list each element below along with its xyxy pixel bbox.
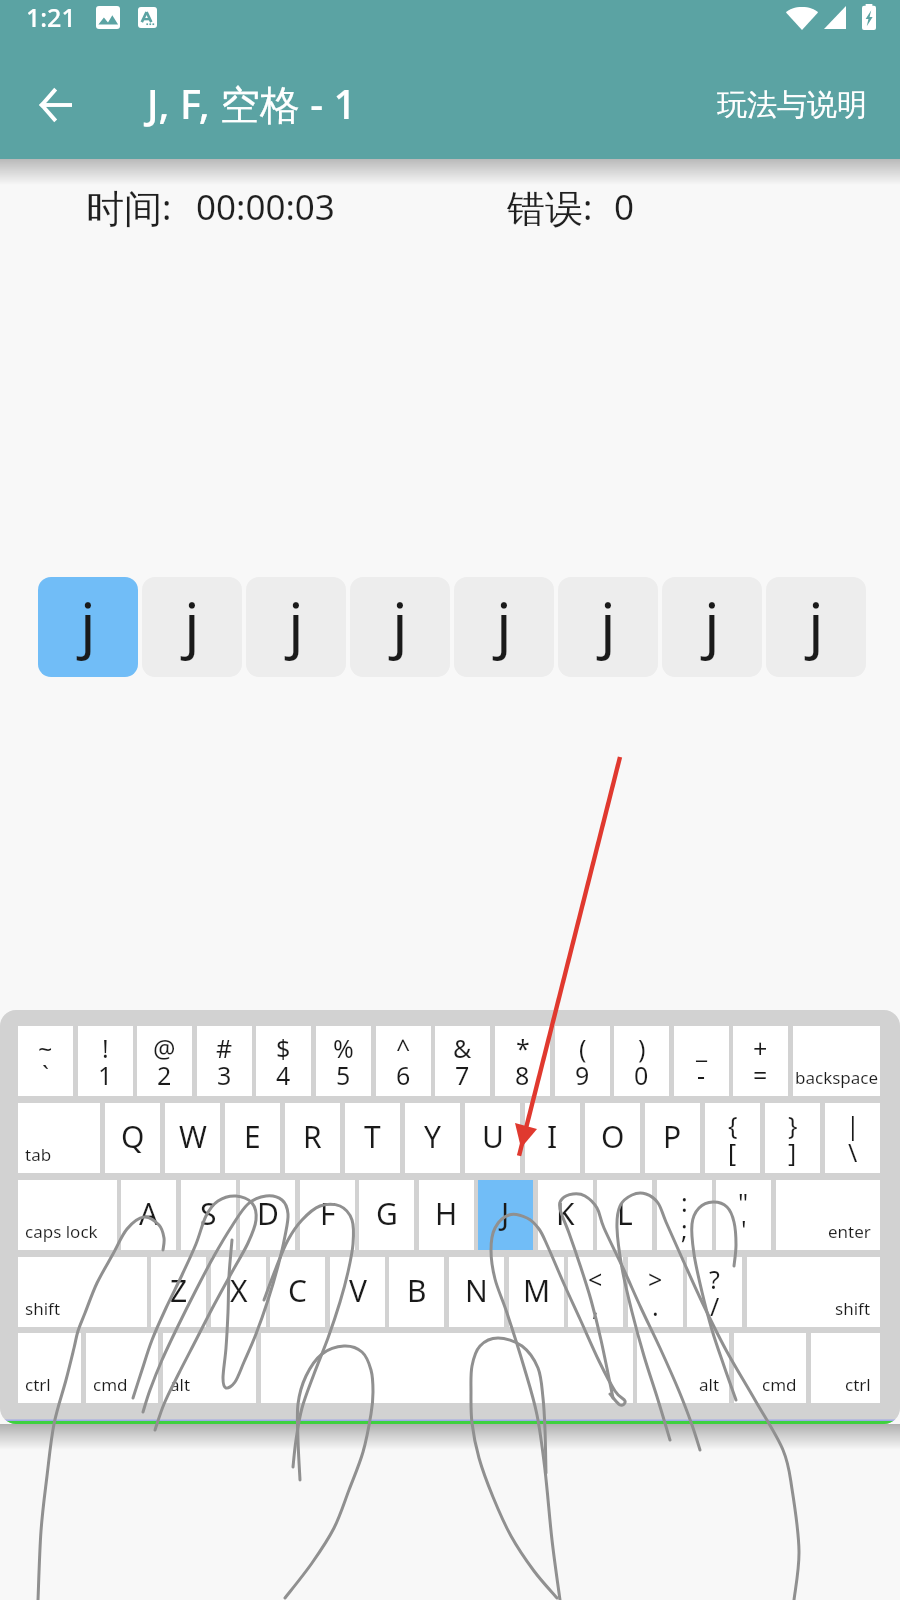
staticText: ,: [592, 1289, 599, 1323]
staticText: tab: [25, 1143, 52, 1166]
button[interactable]: cmd: [86, 1333, 158, 1403]
staticText: j: [80, 582, 96, 665]
staticText: Q: [121, 1116, 145, 1157]
staticText: .: [652, 1289, 659, 1323]
staticText: %: [333, 1031, 354, 1065]
button[interactable]: |: [825, 1103, 880, 1173]
button[interactable]: {: [705, 1103, 760, 1173]
button[interactable]: backspace: [793, 1026, 880, 1096]
button[interactable]: j: [38, 577, 138, 677]
button[interactable]: *: [495, 1026, 550, 1096]
staticText: alt: [170, 1373, 191, 1396]
staticText: G: [376, 1193, 398, 1234]
staticText: ctrl: [25, 1373, 51, 1396]
button[interactable]: H: [419, 1180, 474, 1250]
button[interactable]: tab: [18, 1103, 100, 1173]
button[interactable]: P: [645, 1103, 700, 1173]
button[interactable]: G: [359, 1180, 414, 1250]
button[interactable]: j: [766, 577, 866, 677]
staticText: O: [601, 1116, 625, 1157]
staticText: 3: [217, 1058, 232, 1092]
button[interactable]: A: [121, 1180, 176, 1250]
button[interactable]: alt: [637, 1333, 729, 1403]
button[interactable]: !: [78, 1026, 133, 1096]
button[interactable]: M: [509, 1257, 564, 1327]
button[interactable]: cmd: [734, 1333, 806, 1403]
staticText: ': [741, 1212, 747, 1246]
button[interactable]: j: [246, 577, 346, 677]
staticText: ]: [788, 1135, 797, 1169]
button[interactable]: @: [137, 1026, 192, 1096]
button[interactable]: D: [240, 1180, 295, 1250]
staticText: 错误: [507, 185, 583, 233]
staticText: cmd: [93, 1373, 128, 1396]
staticText: >: [648, 1262, 663, 1296]
button[interactable]: j: [142, 577, 242, 677]
button[interactable]: $: [256, 1026, 311, 1096]
button[interactable]: X: [211, 1257, 266, 1327]
button[interactable]: V: [330, 1257, 385, 1327]
staticText: $: [276, 1031, 291, 1065]
button[interactable]: <: [568, 1257, 623, 1327]
button[interactable]: Y: [405, 1103, 460, 1173]
staticText: Y: [424, 1116, 441, 1157]
button[interactable]: (: [555, 1026, 610, 1096]
staticText: E: [244, 1116, 261, 1157]
button[interactable]: I: [525, 1103, 580, 1173]
staticText: C: [288, 1270, 307, 1311]
button[interactable]: W: [165, 1103, 220, 1173]
staticText: j: [808, 582, 824, 665]
button[interactable]: K: [538, 1180, 593, 1250]
button[interactable]: Q: [105, 1103, 160, 1173]
staticText: P: [663, 1116, 682, 1157]
button[interactable]: R: [285, 1103, 340, 1173]
button[interactable]: ~: [18, 1026, 73, 1096]
button[interactable]: %: [316, 1026, 371, 1096]
button[interactable]: T: [345, 1103, 400, 1173]
button[interactable]: ctrl: [811, 1333, 880, 1403]
button[interactable]: U: [465, 1103, 520, 1173]
button[interactable]: caps lock: [18, 1180, 117, 1250]
staticText: \: [848, 1135, 858, 1169]
button[interactable]: }: [765, 1103, 820, 1173]
staticText: 2: [157, 1058, 172, 1092]
button[interactable]: #: [197, 1026, 252, 1096]
button[interactable]: N: [449, 1257, 504, 1327]
button[interactable]: F: [300, 1180, 355, 1250]
button[interactable]: enter: [776, 1180, 880, 1250]
button[interactable]: j: [350, 577, 450, 677]
button[interactable]: j: [558, 577, 658, 677]
button[interactable]: ": [716, 1180, 771, 1250]
button[interactable]: ?: [687, 1257, 742, 1327]
button[interactable]: C: [270, 1257, 325, 1327]
staticText: cmd: [762, 1373, 797, 1396]
button[interactable]: E: [225, 1103, 280, 1173]
staticText: T: [364, 1116, 381, 1157]
button[interactable]: j: [662, 577, 762, 677]
button[interactable]: ): [614, 1026, 669, 1096]
button[interactable]: S: [181, 1180, 236, 1250]
staticText: ": [738, 1185, 749, 1219]
button[interactable]: shift: [18, 1257, 147, 1327]
button[interactable]: L: [597, 1180, 652, 1250]
staticText: U: [482, 1116, 504, 1157]
button[interactable]: >: [628, 1257, 683, 1327]
button[interactable]: [261, 1333, 633, 1403]
button[interactable]: +: [733, 1026, 788, 1096]
button[interactable]: alt: [163, 1333, 256, 1403]
button[interactable]: O: [585, 1103, 640, 1173]
button[interactable]: ^: [376, 1026, 431, 1096]
button[interactable]: shift: [747, 1257, 880, 1327]
button[interactable]: ctrl: [18, 1333, 81, 1403]
staticText: :: [583, 183, 593, 231]
button[interactable]: Z: [151, 1257, 206, 1327]
button[interactable]: 玩法与说明: [699, 71, 885, 145]
button[interactable]: j: [454, 577, 554, 677]
button[interactable]: B: [389, 1257, 444, 1327]
button[interactable]: Back: [0, 56, 112, 159]
button[interactable]: J: [478, 1180, 533, 1250]
button[interactable]: :: [657, 1180, 712, 1250]
staticText: D: [257, 1193, 279, 1234]
button[interactable]: _: [674, 1026, 729, 1096]
button[interactable]: &: [435, 1026, 490, 1096]
